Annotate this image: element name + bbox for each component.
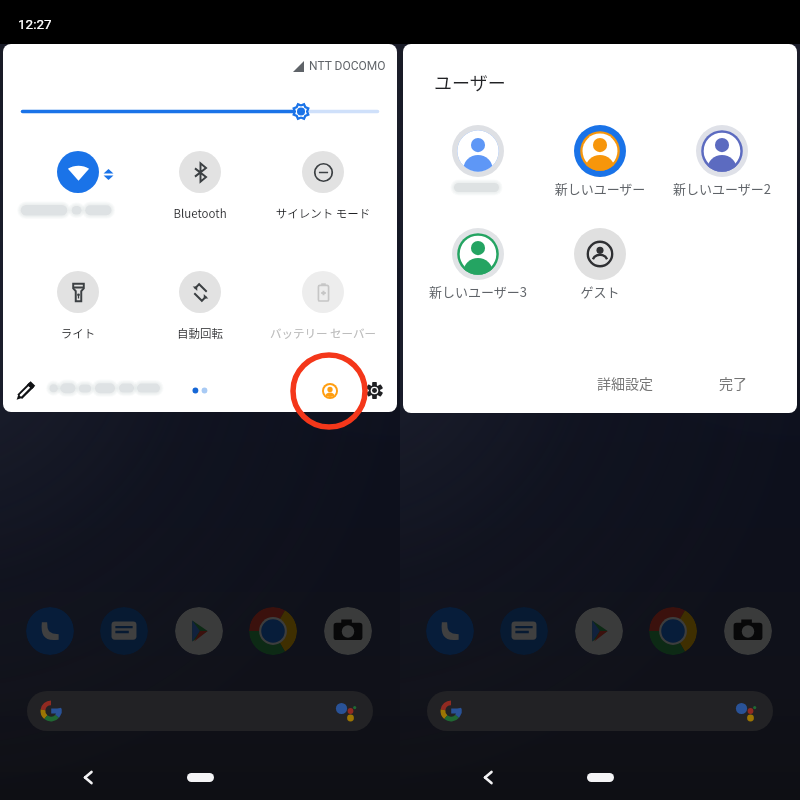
staticText: ライト [8,325,148,342]
button[interactable]: Edit [14,380,36,402]
button[interactable]: App 1 [100,607,148,655]
button[interactable]: 新しいユーザー2 [666,125,778,195]
staticText: サイレント モード [253,205,393,222]
staticText: Bluetooth [130,205,270,222]
button[interactable]: App 3 [249,607,297,655]
button[interactable]: App 0 [26,607,74,655]
staticText: 完了 [719,373,747,393]
button[interactable] [8,151,148,217]
staticText: ユーザー [434,69,506,95]
button[interactable]: ゲスト [544,228,656,298]
button[interactable]: App 4 [724,607,772,655]
button[interactable]: Settings [367,382,382,399]
staticText: NTT DOCOMO [309,59,386,73]
staticText: 新しいユーザー3 [422,282,534,301]
staticText: 12:27 [18,16,52,32]
button[interactable]: Search [427,691,773,731]
button[interactable]: 新しいユーザー [544,125,656,195]
button[interactable] [422,125,534,195]
staticText: 新しいユーザー2 [666,179,778,198]
button[interactable]: App 1 [500,607,548,655]
staticText: 詳細設定 [597,373,653,393]
staticText: 自動回転 [130,325,270,342]
staticText: 新しいユーザー [544,179,656,198]
button[interactable]: Bluetooth [130,151,270,217]
button[interactable]: App 0 [426,607,474,655]
button[interactable]: ライト [8,271,148,337]
button[interactable]: App 3 [649,607,697,655]
button[interactable]: バッテリー セーバー [253,271,393,337]
button[interactable]: Back [474,763,502,791]
button[interactable]: Home [187,773,214,782]
button[interactable]: Home [587,773,614,782]
button[interactable]: 新しいユーザー3 [422,228,534,298]
button[interactable]: App 2 [575,607,623,655]
button[interactable]: App 2 [175,607,223,655]
button[interactable]: App 4 [324,607,372,655]
button[interactable]: 詳細設定 [581,365,669,401]
button[interactable]: Back [74,763,102,791]
button[interactable]: 自動回転 [130,271,270,337]
button[interactable]: Switch user [322,383,338,399]
button[interactable]: Search [27,691,373,731]
button[interactable]: 完了 [699,365,767,401]
staticText: バッテリー セーバー [253,325,393,342]
button[interactable]: サイレント モード [253,151,393,217]
staticText: ゲスト [544,282,656,301]
